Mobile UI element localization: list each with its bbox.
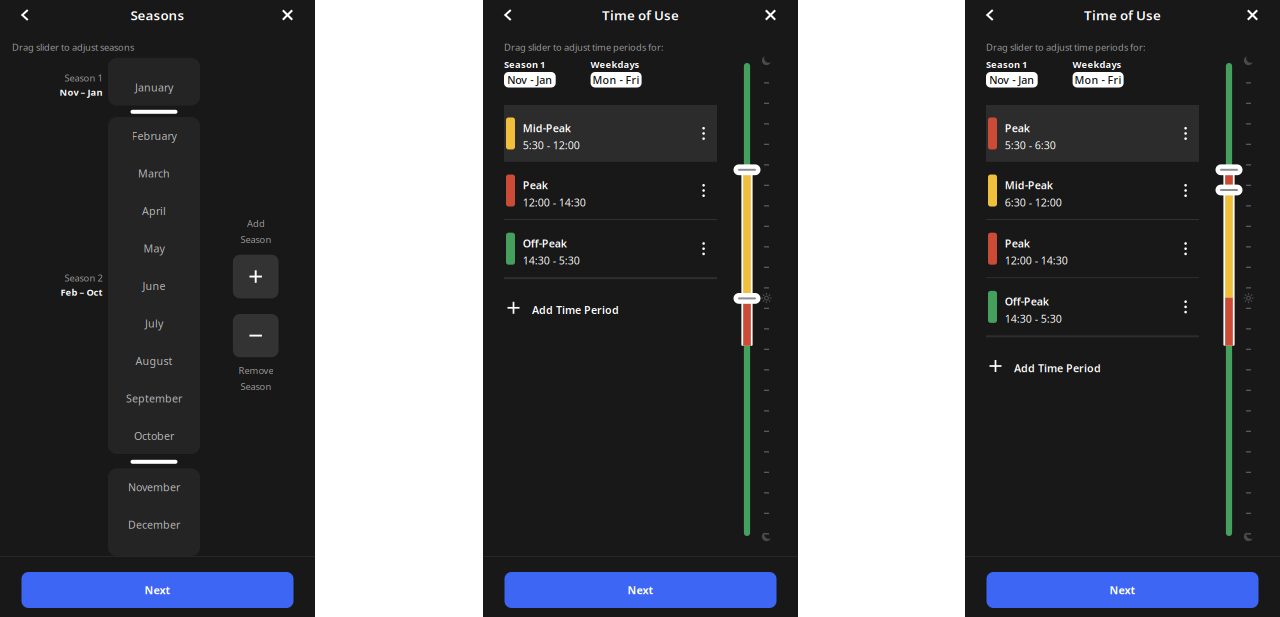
button[interactable]: Off-Peak	[986, 278, 1199, 335]
button[interactable]: Mid-Peak	[986, 162, 1199, 219]
staticText: Nov – Jan	[59, 86, 102, 98]
staticText: Peak	[523, 178, 548, 192]
staticText: November	[128, 480, 180, 494]
staticText: 6:30 - 12:00	[1005, 195, 1062, 209]
staticText: Peak	[1005, 236, 1030, 250]
button[interactable]: Next	[504, 572, 776, 608]
button[interactable]: Add Time Period	[986, 337, 1199, 393]
staticText: May	[143, 241, 164, 255]
staticText: 5:30 - 6:30	[1005, 138, 1056, 152]
staticText: Time of Use	[602, 6, 679, 24]
staticText: Mid-Peak	[1005, 178, 1053, 192]
staticText: Season	[240, 233, 271, 246]
staticText: Time of Use	[1084, 6, 1161, 24]
staticText: 14:30 - 5:30	[1005, 312, 1062, 326]
staticText: Feb – Oct	[60, 286, 102, 298]
button[interactable]: Mon - Fri	[1073, 72, 1124, 87]
button[interactable]: Add Time Period	[504, 279, 717, 335]
staticText: Remove	[238, 364, 273, 377]
staticText: Weekdays	[1073, 58, 1122, 71]
button[interactable]: Next	[21, 572, 293, 608]
staticText: Season	[240, 380, 271, 393]
staticText: Weekdays	[591, 58, 640, 71]
staticText: December	[128, 517, 180, 532]
button[interactable]: Back	[484, 0, 531, 30]
staticText: September	[126, 391, 182, 405]
staticText: March	[138, 166, 170, 180]
button[interactable]: Off-Peak	[504, 220, 717, 277]
button[interactable]: Close	[748, 0, 793, 30]
staticText: Add	[247, 217, 265, 230]
staticText: August	[135, 354, 172, 368]
staticText: Peak	[1005, 121, 1030, 135]
staticText: Season 2	[64, 272, 102, 284]
staticText: Mon - Fri	[593, 73, 640, 87]
button[interactable]: Nov - Jan	[504, 72, 556, 87]
staticText: Mid-Peak	[523, 121, 571, 135]
staticText: Seasons	[130, 6, 184, 24]
staticText: Season 1	[504, 58, 545, 71]
staticText: 12:00 - 14:30	[523, 195, 586, 209]
staticText: July	[145, 316, 163, 330]
button[interactable]: Peak	[986, 105, 1199, 162]
staticText: Drag slider to adjust seasons	[12, 41, 134, 53]
button[interactable]: Mon - Fri	[591, 72, 642, 87]
staticText: October	[134, 429, 174, 443]
staticText: June	[142, 279, 165, 293]
button[interactable]: Next	[986, 572, 1258, 608]
staticText: 12:00 - 14:30	[1005, 253, 1068, 268]
staticText: February	[131, 129, 176, 143]
staticText: Next	[144, 583, 170, 597]
staticText: Nov - Jan	[989, 73, 1034, 87]
staticText: Nov - Jan	[507, 73, 552, 87]
button[interactable]: Close	[265, 0, 310, 30]
staticText: Off-Peak	[1005, 294, 1049, 309]
staticText: Off-Peak	[523, 236, 567, 250]
button[interactable]: Back	[1, 0, 48, 30]
button[interactable]: Add Season	[233, 255, 278, 298]
staticText: April	[142, 204, 166, 218]
staticText: Mon - Fri	[1075, 73, 1122, 87]
staticText: January	[135, 80, 173, 94]
staticText: Season 1	[986, 58, 1027, 71]
button[interactable]: Close	[1230, 0, 1275, 30]
staticText: Season 1	[64, 72, 102, 84]
staticText: 5:30 - 12:00	[523, 138, 580, 152]
button[interactable]: Nov - Jan	[986, 72, 1038, 87]
staticText: Drag slider to adjust time periods for:	[504, 41, 664, 53]
staticText: 14:30 - 5:30	[523, 253, 580, 268]
button[interactable]: Peak	[986, 220, 1199, 277]
staticText: Drag slider to adjust time periods for:	[986, 41, 1146, 53]
button[interactable]: Mid-Peak	[504, 105, 717, 162]
staticText: Add Time Period	[1014, 361, 1101, 375]
staticText: Next	[1109, 583, 1135, 597]
button[interactable]: Remove Season	[233, 314, 278, 357]
staticText: Add Time Period	[532, 303, 619, 317]
button[interactable]: Peak	[504, 162, 717, 219]
button[interactable]: Back	[966, 0, 1013, 30]
staticText: Next	[627, 583, 653, 597]
